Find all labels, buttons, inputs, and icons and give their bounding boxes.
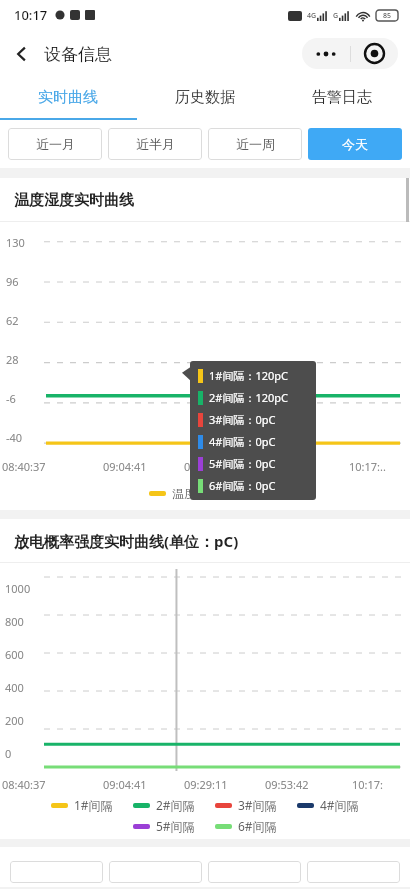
button[interactable]: 近半月 — [108, 128, 202, 160]
staticText: 今天 — [342, 136, 368, 152]
button[interactable]: Back — [0, 32, 44, 76]
staticText: 85 — [383, 11, 392, 21]
staticText: 放电概率强度实时曲线(单位：pC) — [14, 531, 239, 551]
staticText: 温度 — [172, 486, 196, 501]
button[interactable]: 温度 — [149, 486, 196, 501]
staticText: -6 — [6, 391, 16, 406]
staticText: 5#间隔：0pC — [209, 456, 276, 471]
staticText: 设备信息 — [44, 44, 112, 65]
staticText: 10:17:.. — [349, 459, 386, 474]
staticText: 3#间隔：0pC — [209, 412, 276, 427]
button[interactable]: 3#间隔 — [215, 797, 277, 813]
staticText: 130 — [6, 235, 25, 250]
button[interactable]: 1#间隔 — [51, 797, 113, 813]
staticText: 10:17 — [14, 6, 48, 24]
staticText: 历史数据 — [175, 88, 235, 107]
staticText: 5#间隔 — [156, 818, 195, 834]
button[interactable]: 今天 — [308, 128, 402, 160]
button[interactable] — [109, 861, 202, 883]
staticText: 400 — [5, 680, 24, 695]
button[interactable]: 2#间隔 — [133, 797, 195, 813]
button[interactable]: More options — [302, 38, 350, 69]
staticText: 800 — [5, 614, 24, 629]
button[interactable]: 4#间隔 — [297, 797, 359, 813]
staticText: 1#间隔：120pC — [209, 368, 288, 383]
button[interactable]: 实时曲线 — [0, 77, 136, 118]
staticText: 2#间隔：120pC — [209, 390, 288, 405]
button[interactable]: 6#间隔 — [215, 818, 277, 834]
button[interactable]: 历史数据 — [136, 77, 273, 118]
staticText: -40 — [6, 430, 23, 445]
button[interactable] — [307, 861, 400, 883]
staticText: 09:29:11 — [184, 459, 228, 474]
staticText: 09:53:42 — [265, 459, 309, 474]
staticText: 4G — [307, 11, 317, 21]
staticText: 2#间隔 — [156, 797, 195, 813]
button[interactable] — [10, 861, 103, 883]
staticText: 1000 — [5, 581, 31, 596]
staticText: 10:17: — [352, 777, 384, 792]
staticText: 湿度 — [237, 486, 261, 501]
button[interactable]: Record — [351, 38, 398, 69]
staticText: 4#间隔：0pC — [209, 434, 276, 449]
staticText: 近一周 — [236, 136, 275, 152]
button[interactable] — [208, 861, 301, 883]
staticText: 近一月 — [36, 136, 75, 152]
staticText: 实时曲线 — [38, 88, 98, 107]
staticText: 4#间隔 — [320, 797, 359, 813]
staticText: 09:04:41 — [103, 459, 147, 474]
button[interactable]: 近一周 — [208, 128, 302, 160]
staticText: 6#间隔：0pC — [209, 478, 276, 493]
staticText: 08:40:37 — [2, 459, 46, 474]
staticText: 近半月 — [136, 136, 175, 152]
staticText: 62 — [6, 313, 19, 328]
staticText: 3#间隔 — [238, 797, 277, 813]
staticText: 6#间隔 — [238, 818, 277, 834]
staticText: 28 — [6, 352, 19, 367]
staticText: 0 — [5, 746, 12, 761]
staticText: 08:40:37 — [2, 777, 46, 792]
staticText: 09:53:42 — [265, 777, 309, 792]
staticText: 告警日志 — [312, 88, 372, 107]
button[interactable]: 近一月 — [8, 128, 102, 160]
staticText: 1#间隔 — [74, 797, 113, 813]
staticText: 09:29:11 — [184, 777, 228, 792]
staticText: 200 — [5, 713, 24, 728]
button[interactable]: 5#间隔 — [133, 818, 195, 834]
staticText: G — [333, 11, 339, 21]
staticText: 09:04:41 — [103, 777, 147, 792]
staticText: 600 — [5, 647, 24, 662]
button[interactable]: 湿度 — [214, 486, 261, 501]
button[interactable]: 告警日志 — [273, 77, 410, 118]
staticText: 温度湿度实时曲线 — [14, 191, 134, 210]
staticText: 96 — [6, 274, 19, 289]
